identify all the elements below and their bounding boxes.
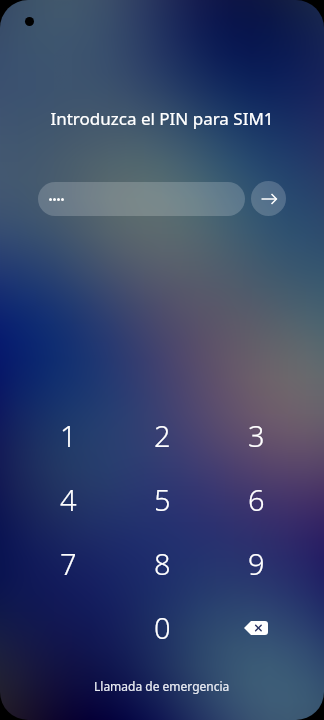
staticText: 7 bbox=[60, 544, 77, 583]
button[interactable]: Enter PIN bbox=[251, 181, 286, 216]
staticText: 5 bbox=[154, 480, 171, 519]
staticText: 3 bbox=[248, 416, 265, 455]
staticText: Introduzca el PIN para SIM1 bbox=[0, 107, 324, 130]
other: Backspace bbox=[244, 621, 268, 635]
button[interactable]: 0 bbox=[115, 596, 209, 660]
staticText: 2 bbox=[154, 416, 171, 455]
button[interactable]: Llamada de emergencia bbox=[0, 678, 324, 694]
staticText: 4 bbox=[60, 480, 77, 519]
button[interactable]: 7 bbox=[21, 532, 115, 596]
button[interactable]: 3 bbox=[209, 404, 303, 468]
staticText: 6 bbox=[248, 480, 265, 519]
staticText: 9 bbox=[248, 544, 265, 583]
staticText: 1 bbox=[60, 416, 77, 455]
button[interactable] bbox=[38, 182, 245, 216]
staticText: Llamada de emergencia bbox=[94, 678, 230, 694]
button[interactable]: 9 bbox=[209, 532, 303, 596]
button[interactable]: 6 bbox=[209, 468, 303, 532]
button[interactable]: Backspace bbox=[209, 596, 303, 660]
button[interactable]: 4 bbox=[21, 468, 115, 532]
button[interactable] bbox=[21, 596, 115, 660]
button[interactable]: 5 bbox=[115, 468, 209, 532]
staticText: 8 bbox=[154, 544, 171, 583]
button[interactable]: 8 bbox=[115, 532, 209, 596]
staticText: 0 bbox=[154, 608, 171, 647]
button[interactable]: 2 bbox=[115, 404, 209, 468]
button[interactable]: 1 bbox=[21, 404, 115, 468]
